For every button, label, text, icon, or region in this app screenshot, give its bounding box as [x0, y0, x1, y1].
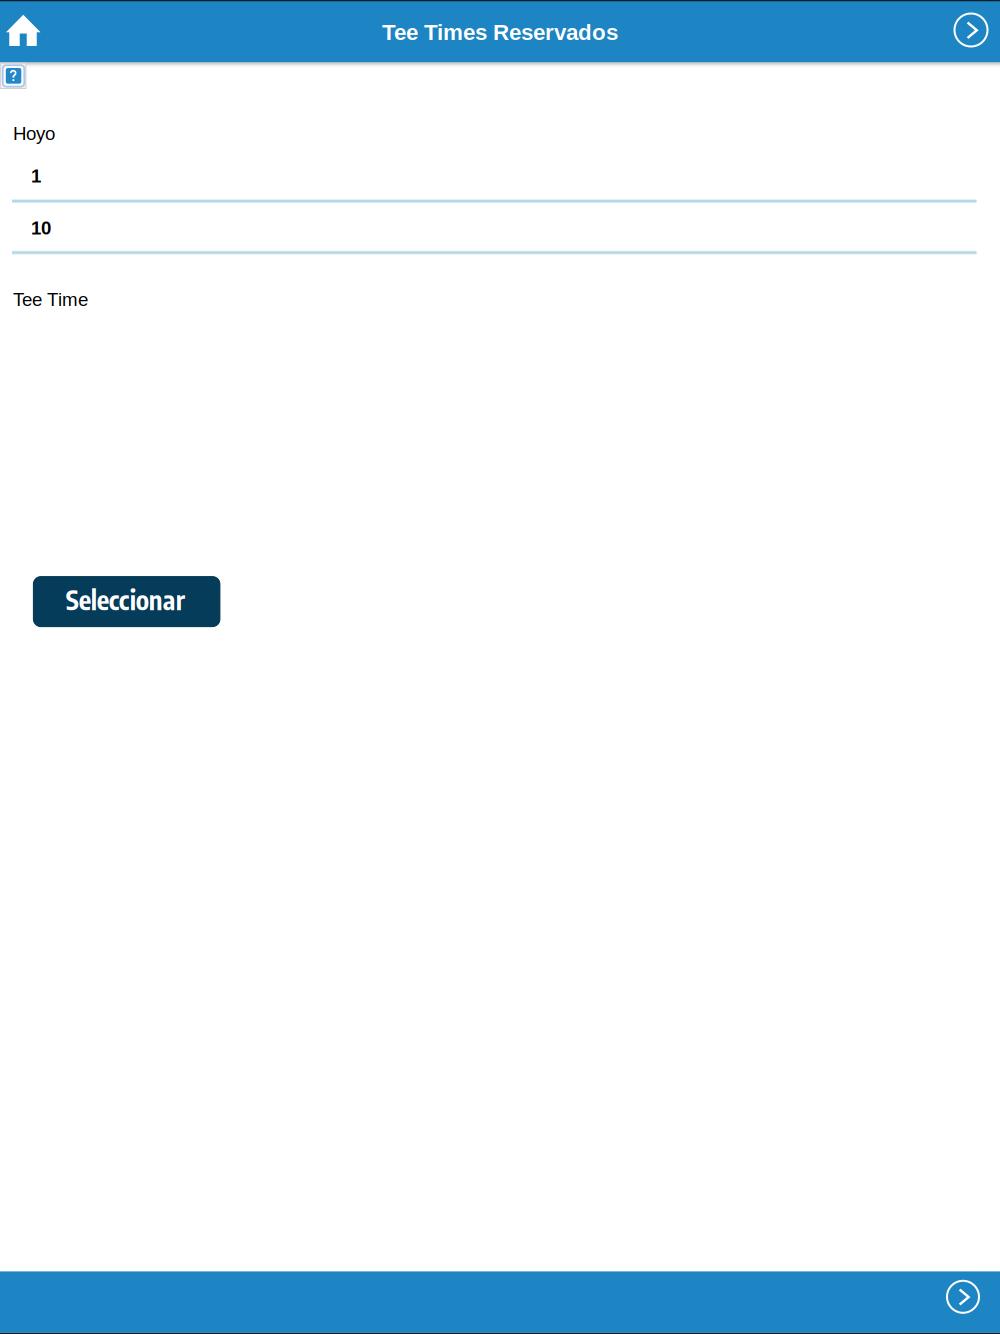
- button[interactable]: Siguiente: [942, 0, 1000, 60]
- button[interactable]: 1: [12, 150, 976, 202]
- staticText: Hoyo: [13, 123, 55, 144]
- button[interactable]: Siguiente: [933, 1276, 993, 1318]
- staticText: 1: [31, 166, 41, 186]
- staticText: Seleccionar: [66, 583, 185, 616]
- staticText: Tee Times Reservados: [382, 20, 618, 45]
- staticText: 10: [31, 218, 51, 238]
- button[interactable]: Inicio: [0, 0, 47, 60]
- staticText: Tee Time: [13, 289, 88, 310]
- button[interactable]: Seleccionar: [33, 577, 220, 627]
- button[interactable]: 10: [12, 202, 976, 254]
